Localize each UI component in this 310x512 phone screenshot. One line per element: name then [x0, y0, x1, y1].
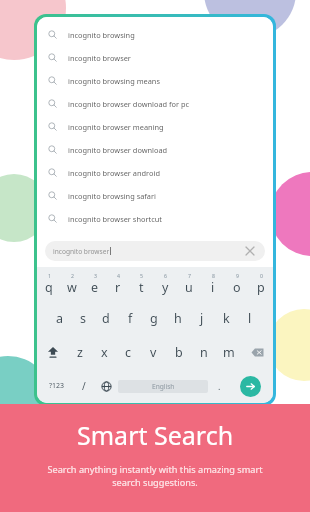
staticText: v: [150, 344, 157, 361]
button[interactable]: incognito browsing safari: [37, 184, 273, 207]
button[interactable]: 2: [60, 267, 83, 301]
button[interactable]: ?123: [41, 369, 73, 403]
button[interactable]: 1: [37, 267, 60, 301]
staticText: incognito browser download for pc: [68, 99, 190, 109]
staticText: 3: [94, 272, 97, 279]
button[interactable]: English: [118, 380, 208, 393]
staticText: incognito browser meaning: [68, 122, 164, 132]
staticText: incognito browser: [68, 53, 131, 63]
staticText: incognito browsing safari: [68, 191, 156, 201]
button[interactable]: 8: [201, 267, 225, 301]
staticText: 9: [236, 272, 239, 279]
button[interactable]: incognito browsing: [37, 23, 273, 46]
staticText: 0: [260, 272, 263, 279]
button[interactable]: incognito browser download for pc: [37, 92, 273, 115]
button[interactable]: Search: [231, 369, 269, 403]
button[interactable]: 5: [129, 267, 153, 301]
staticText: k: [223, 310, 230, 327]
staticText: incognito browser android: [68, 168, 160, 178]
button[interactable]: x: [92, 335, 116, 369]
staticText: ?123: [49, 381, 65, 391]
button[interactable]: n: [191, 335, 216, 369]
staticText: q: [45, 279, 53, 296]
button[interactable]: /: [73, 369, 95, 403]
staticText: y: [162, 279, 169, 296]
button[interactable]: 3: [83, 267, 106, 301]
staticText: English: [152, 382, 175, 391]
button[interactable]: incognito browser shortcut: [37, 207, 273, 230]
staticText: 7: [188, 272, 191, 279]
staticText: l: [248, 310, 252, 327]
button[interactable]: h: [166, 301, 190, 335]
staticText: 4: [117, 272, 120, 279]
staticText: t: [139, 279, 144, 296]
staticText: n: [200, 344, 208, 361]
staticText: j: [200, 310, 204, 327]
staticText: Search anything instantly with this amaz…: [34, 463, 276, 488]
button[interactable]: d: [94, 301, 118, 335]
button[interactable]: m: [216, 335, 241, 369]
staticText: h: [174, 310, 182, 327]
staticText: s: [80, 310, 86, 327]
button[interactable]: v: [141, 335, 166, 369]
staticText: 8: [212, 272, 215, 279]
button[interactable]: f: [118, 301, 142, 335]
staticText: 2: [71, 272, 74, 279]
button[interactable]: j: [190, 301, 214, 335]
staticText: .: [218, 380, 221, 392]
staticText: 6: [164, 272, 167, 279]
staticText: incognito browser download: [68, 145, 168, 155]
staticText: x: [101, 344, 108, 361]
button[interactable]: 9: [225, 267, 249, 301]
staticText: d: [102, 310, 110, 327]
staticText: 1: [48, 272, 51, 279]
button[interactable]: incognito browser download: [37, 138, 273, 161]
staticText: incognito browsing means: [68, 76, 160, 86]
button[interactable]: a: [48, 301, 71, 335]
staticText: w: [67, 279, 77, 296]
staticText: u: [185, 279, 193, 296]
staticText: 5: [140, 272, 143, 279]
staticText: incognito browser shortcut: [68, 214, 162, 224]
staticText: i: [211, 279, 215, 296]
button[interactable]: l: [238, 301, 262, 335]
staticText: g: [150, 310, 158, 327]
staticText: c: [125, 344, 132, 361]
button[interactable]: incognito browser: [45, 241, 265, 261]
button[interactable]: Shift: [37, 335, 68, 369]
button[interactable]: s: [71, 301, 94, 335]
button[interactable]: Backspace: [241, 335, 273, 369]
button[interactable]: 4: [106, 267, 129, 301]
staticText: Smart Search: [77, 418, 234, 452]
button[interactable]: incognito browser meaning: [37, 115, 273, 138]
button[interactable]: g: [142, 301, 166, 335]
staticText: p: [257, 279, 265, 296]
staticText: e: [91, 279, 99, 296]
staticText: /: [82, 379, 86, 393]
button[interactable]: incognito browser: [37, 46, 273, 69]
button[interactable]: 0: [249, 267, 273, 301]
staticText: a: [56, 310, 64, 327]
button[interactable]: k: [214, 301, 238, 335]
staticText: r: [115, 279, 121, 296]
staticText: m: [223, 344, 235, 361]
button[interactable]: c: [116, 335, 141, 369]
button[interactable]: .: [208, 369, 231, 403]
button[interactable]: z: [68, 335, 92, 369]
staticText: f: [128, 310, 133, 327]
button[interactable]: 7: [177, 267, 201, 301]
button[interactable]: Clear search: [243, 244, 257, 258]
staticText: z: [77, 344, 83, 361]
staticText: b: [175, 344, 183, 361]
button[interactable]: incognito browsing means: [37, 69, 273, 92]
button[interactable]: Change language: [95, 369, 118, 403]
button[interactable]: 6: [153, 267, 177, 301]
staticText: incognito browsing: [68, 30, 135, 40]
button[interactable]: b: [166, 335, 191, 369]
staticText: incognito browser: [53, 247, 110, 256]
button[interactable]: incognito browser android: [37, 161, 273, 184]
staticText: o: [233, 279, 241, 296]
